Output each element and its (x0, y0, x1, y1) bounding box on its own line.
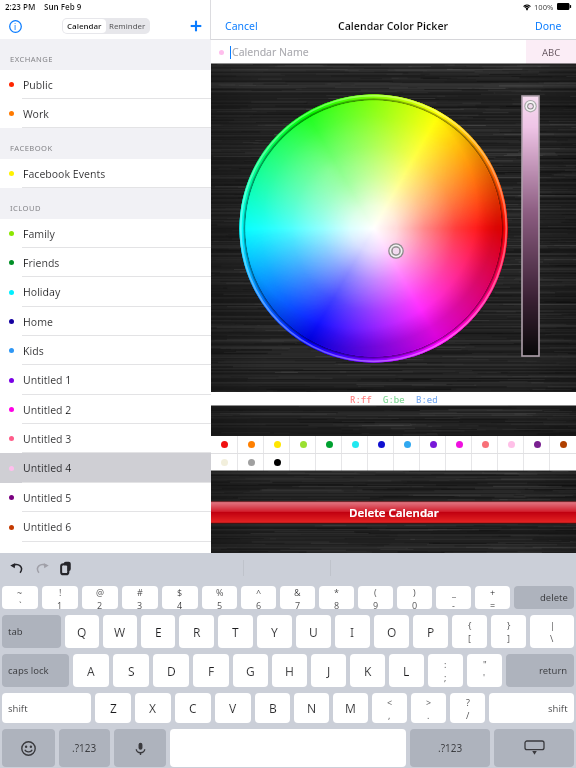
button[interactable] (238, 436, 264, 453)
button[interactable]: .?123 (410, 729, 490, 767)
button[interactable]: | (530, 615, 574, 648)
button[interactable]: Cancel (211, 15, 266, 37)
button[interactable]: Calendar (63, 19, 106, 33)
button[interactable]: H (272, 654, 307, 687)
button[interactable]: I (335, 615, 370, 648)
button[interactable]: Work (0, 99, 211, 128)
button[interactable]: Friends (0, 248, 211, 277)
button[interactable]: Add calendar (186, 16, 206, 36)
button[interactable]: Untitled 5 (0, 483, 211, 512)
button[interactable] (368, 454, 394, 471)
button[interactable]: $ (162, 586, 198, 609)
button[interactable] (394, 454, 420, 471)
button[interactable]: Emoji (2, 729, 55, 767)
button[interactable]: S (113, 654, 149, 687)
button[interactable]: G (233, 654, 268, 687)
button[interactable] (211, 436, 238, 453)
button[interactable] (498, 436, 524, 453)
button[interactable] (550, 436, 576, 453)
button[interactable]: V (215, 693, 251, 723)
button[interactable]: Paste (59, 561, 73, 575)
button[interactable]: O (374, 615, 409, 648)
button[interactable] (524, 436, 550, 453)
button[interactable]: Kids (0, 336, 211, 365)
button[interactable]: Reminder (106, 19, 149, 33)
button[interactable] (316, 454, 342, 471)
button[interactable] (472, 436, 498, 453)
button[interactable]: ~ (2, 586, 38, 609)
button[interactable] (316, 436, 342, 453)
button[interactable]: Untitled 6 (0, 512, 211, 542)
button[interactable]: Untitled 4 (0, 453, 211, 483)
button[interactable] (368, 436, 394, 453)
button[interactable] (524, 454, 550, 471)
button[interactable]: W (103, 615, 137, 648)
button[interactable]: " (467, 654, 502, 687)
button[interactable] (420, 454, 446, 471)
button[interactable]: Brightness (522, 96, 539, 356)
button[interactable] (264, 436, 290, 453)
button[interactable]: Delete Calendar (211, 501, 576, 524)
button[interactable]: @ (82, 586, 118, 609)
button[interactable] (238, 454, 264, 471)
button[interactable] (472, 454, 498, 471)
button[interactable]: R (179, 615, 214, 648)
button[interactable]: Q (65, 615, 99, 648)
button[interactable]: N (294, 693, 329, 723)
button[interactable]: shift (489, 693, 574, 723)
button[interactable] (446, 454, 472, 471)
button[interactable]: Holiday (0, 277, 211, 307)
button[interactable]: % (202, 586, 237, 609)
button[interactable]: C (175, 693, 211, 723)
button[interactable]: # (122, 586, 158, 609)
button[interactable]: Facebook Events (0, 159, 211, 188)
button[interactable] (290, 436, 316, 453)
button[interactable] (211, 454, 238, 471)
button[interactable]: Untitled 2 (0, 395, 211, 424)
button[interactable]: Z (95, 693, 131, 723)
button[interactable]: Untitled 3 (0, 424, 211, 453)
button[interactable]: tab (2, 615, 61, 648)
button[interactable]: } (491, 615, 526, 648)
button[interactable]: Undo (10, 561, 24, 575)
button[interactable] (394, 436, 420, 453)
button[interactable]: shift (2, 693, 91, 723)
button[interactable]: : (428, 654, 463, 687)
button[interactable]: < (372, 693, 407, 723)
button[interactable]: J (311, 654, 346, 687)
button[interactable]: ( (358, 586, 393, 609)
button[interactable] (342, 436, 368, 453)
button[interactable] (342, 454, 368, 471)
button[interactable] (290, 454, 316, 471)
button[interactable] (264, 454, 290, 471)
button[interactable]: M (333, 693, 368, 723)
button[interactable]: Done (527, 15, 576, 37)
button[interactable]: ABC (526, 40, 576, 64)
button[interactable]: & (280, 586, 315, 609)
button[interactable] (446, 436, 472, 453)
button[interactable] (498, 454, 524, 471)
button[interactable]: B (255, 693, 290, 723)
button[interactable]: > (411, 693, 446, 723)
button[interactable]: Home (0, 307, 211, 336)
button[interactable]: ^ (241, 586, 276, 609)
button[interactable]: L (389, 654, 424, 687)
button[interactable]: + (475, 586, 510, 609)
button[interactable]: P (413, 615, 448, 648)
button[interactable]: Redo (35, 561, 49, 575)
button[interactable]: Public (0, 70, 211, 99)
button[interactable]: ) (397, 586, 432, 609)
button[interactable]: T (218, 615, 253, 648)
button[interactable]: A (73, 654, 109, 687)
button[interactable]: Hide keyboard (494, 729, 574, 767)
button[interactable]: Info (9, 20, 22, 33)
button[interactable]: X (135, 693, 171, 723)
button[interactable]: ! (42, 586, 78, 609)
button[interactable]: K (350, 654, 385, 687)
button[interactable]: D (153, 654, 189, 687)
button[interactable]: F (193, 654, 229, 687)
button[interactable]: { (452, 615, 487, 648)
button[interactable] (550, 454, 576, 471)
button[interactable]: Y (257, 615, 292, 648)
